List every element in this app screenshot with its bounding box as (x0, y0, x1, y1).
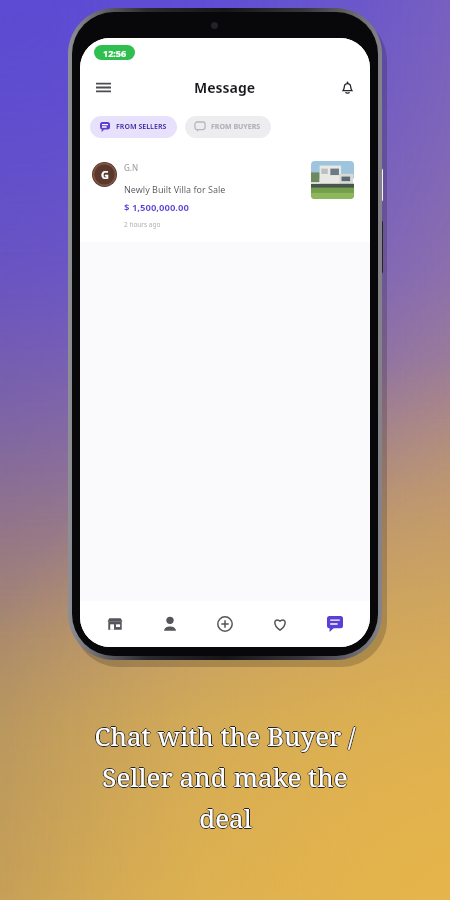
staticText: deal (199, 801, 252, 836)
staticText: Seller and make the (102, 758, 348, 793)
staticText: 12:56 (103, 47, 127, 59)
button[interactable]: FROM SELLERS (90, 116, 177, 138)
button[interactable]: Store (95, 604, 135, 644)
staticText: Chat with the Buyer / (94, 719, 356, 754)
staticText: Chat with the Buyer / (94, 717, 356, 752)
button[interactable]: Profile (150, 604, 190, 644)
staticText: FROM SELLERS (116, 122, 167, 132)
button[interactable]: Add (205, 604, 245, 644)
staticText: Message (194, 78, 256, 97)
staticText: $ 1,500,000.00 (124, 201, 189, 214)
staticText: FROM BUYERS (211, 122, 261, 132)
staticText: Seller and make the (103, 759, 349, 794)
staticText: Seller and make the (101, 759, 347, 794)
staticText: G (101, 167, 109, 182)
staticText: Chat with the Buyer / (94, 718, 356, 753)
staticText: deal (199, 800, 252, 835)
staticText: deal (199, 799, 252, 834)
button[interactable]: Menu (88, 72, 118, 102)
button[interactable]: G (80, 150, 370, 242)
staticText: Seller and make the (102, 760, 348, 795)
staticText: G.N (124, 162, 139, 173)
button[interactable]: FROM BUYERS (185, 116, 271, 138)
staticText: deal (200, 800, 253, 835)
staticText: Seller and make the (102, 759, 348, 794)
button[interactable]: Notifications (332, 72, 362, 102)
button[interactable]: Messages (315, 604, 355, 644)
button[interactable]: Favorites (260, 604, 300, 644)
staticText: Newly Built Villa for Sale (124, 183, 226, 195)
staticText: 2 hours ago (124, 220, 161, 229)
staticText: Chat with the Buyer / (93, 718, 355, 753)
staticText: Chat with the Buyer / (95, 718, 357, 753)
staticText: deal (198, 800, 251, 835)
